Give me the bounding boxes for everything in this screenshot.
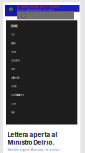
- staticText: Ministro Delrio.: [8, 139, 55, 146]
- button[interactable]: Chi: [10, 30, 74, 39]
- staticText: Lettera aperta al: [8, 131, 58, 138]
- staticText: Corso: [11, 85, 17, 88]
- button[interactable]: Nazionale: [10, 73, 74, 82]
- staticText: Gentile signor Ministro, le scrivo: [8, 148, 60, 152]
- button[interactable]: siamo: [10, 39, 74, 47]
- staticText: notizie e approfondimenti sul lavoro: [17, 9, 54, 12]
- button[interactable]: Corso: [10, 82, 74, 91]
- button[interactable]: Sportelli: [10, 56, 74, 65]
- button[interactable]: Home: [10, 22, 74, 30]
- button[interactable]: Dove: [10, 48, 74, 56]
- button[interactable]: Cosa: [10, 99, 74, 108]
- staticText: Dove: [11, 50, 16, 53]
- button[interactable]: Search: [21, 13, 26, 18]
- button[interactable]: Olio: [10, 65, 74, 73]
- staticText: Home: [11, 24, 17, 28]
- button[interactable]: Mia: [10, 108, 74, 116]
- staticText: Olio: [11, 67, 15, 71]
- staticText: Chi: [11, 33, 15, 36]
- button[interactable]: Home: [5, 5, 17, 16]
- staticText: Cosa: [11, 102, 15, 105]
- staticText: Contrattazione: [11, 93, 24, 97]
- staticText: siamo: [11, 42, 16, 45]
- staticText: IL QUOTIDIANO DEL LAVORO: [17, 5, 59, 9]
- staticText: Nazionale: [11, 76, 20, 79]
- staticText: Sportelli: [11, 59, 20, 62]
- staticText: Mia: [11, 111, 14, 114]
- button[interactable]: Contrattazione: [10, 91, 74, 99]
